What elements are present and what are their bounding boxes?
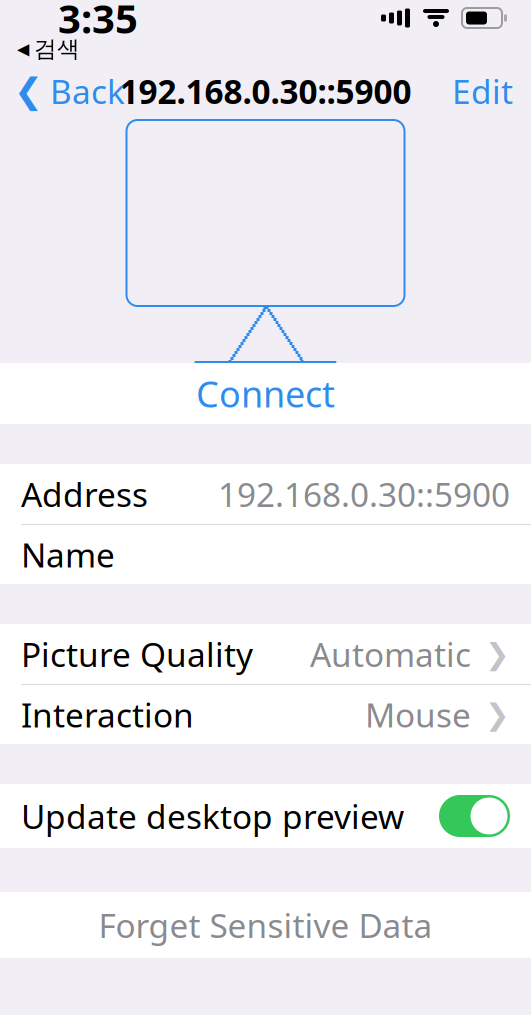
staticText: Connect (196, 370, 335, 417)
button[interactable]: Update desktop preview (439, 795, 510, 837)
staticText: 192.168.0.30::5900 (218, 472, 510, 516)
button[interactable]: Edit (434, 63, 531, 119)
staticText: ❯ (485, 698, 510, 731)
staticText: ❯ (485, 637, 510, 671)
staticText: Edit (452, 69, 513, 113)
staticText: Forget Sensitive Data (98, 903, 432, 947)
staticText: Automatic (310, 632, 471, 676)
staticText: Back (50, 69, 125, 113)
staticText: Interaction (21, 692, 194, 737)
button[interactable]: Picture Quality (0, 624, 531, 684)
staticText: 192.168.0.30::5900 (119, 69, 411, 113)
staticText: ◀ (17, 40, 29, 58)
button[interactable]: Connect (0, 363, 531, 424)
button[interactable]: Interaction (0, 685, 531, 744)
button[interactable]: Address (0, 464, 531, 524)
staticText: ❮ (14, 71, 43, 111)
staticText: Name (21, 532, 115, 577)
staticText: Address (21, 472, 148, 516)
button[interactable]: ❮ (0, 63, 139, 119)
staticText: 검색 (34, 35, 80, 63)
button[interactable]: Name (0, 525, 531, 584)
staticText: 3:35 (58, 0, 138, 44)
button[interactable]: Forget Sensitive Data (0, 892, 531, 958)
staticText: Picture Quality (21, 632, 253, 676)
staticText: Mouse (365, 692, 471, 737)
staticText: Update desktop preview (21, 794, 404, 838)
